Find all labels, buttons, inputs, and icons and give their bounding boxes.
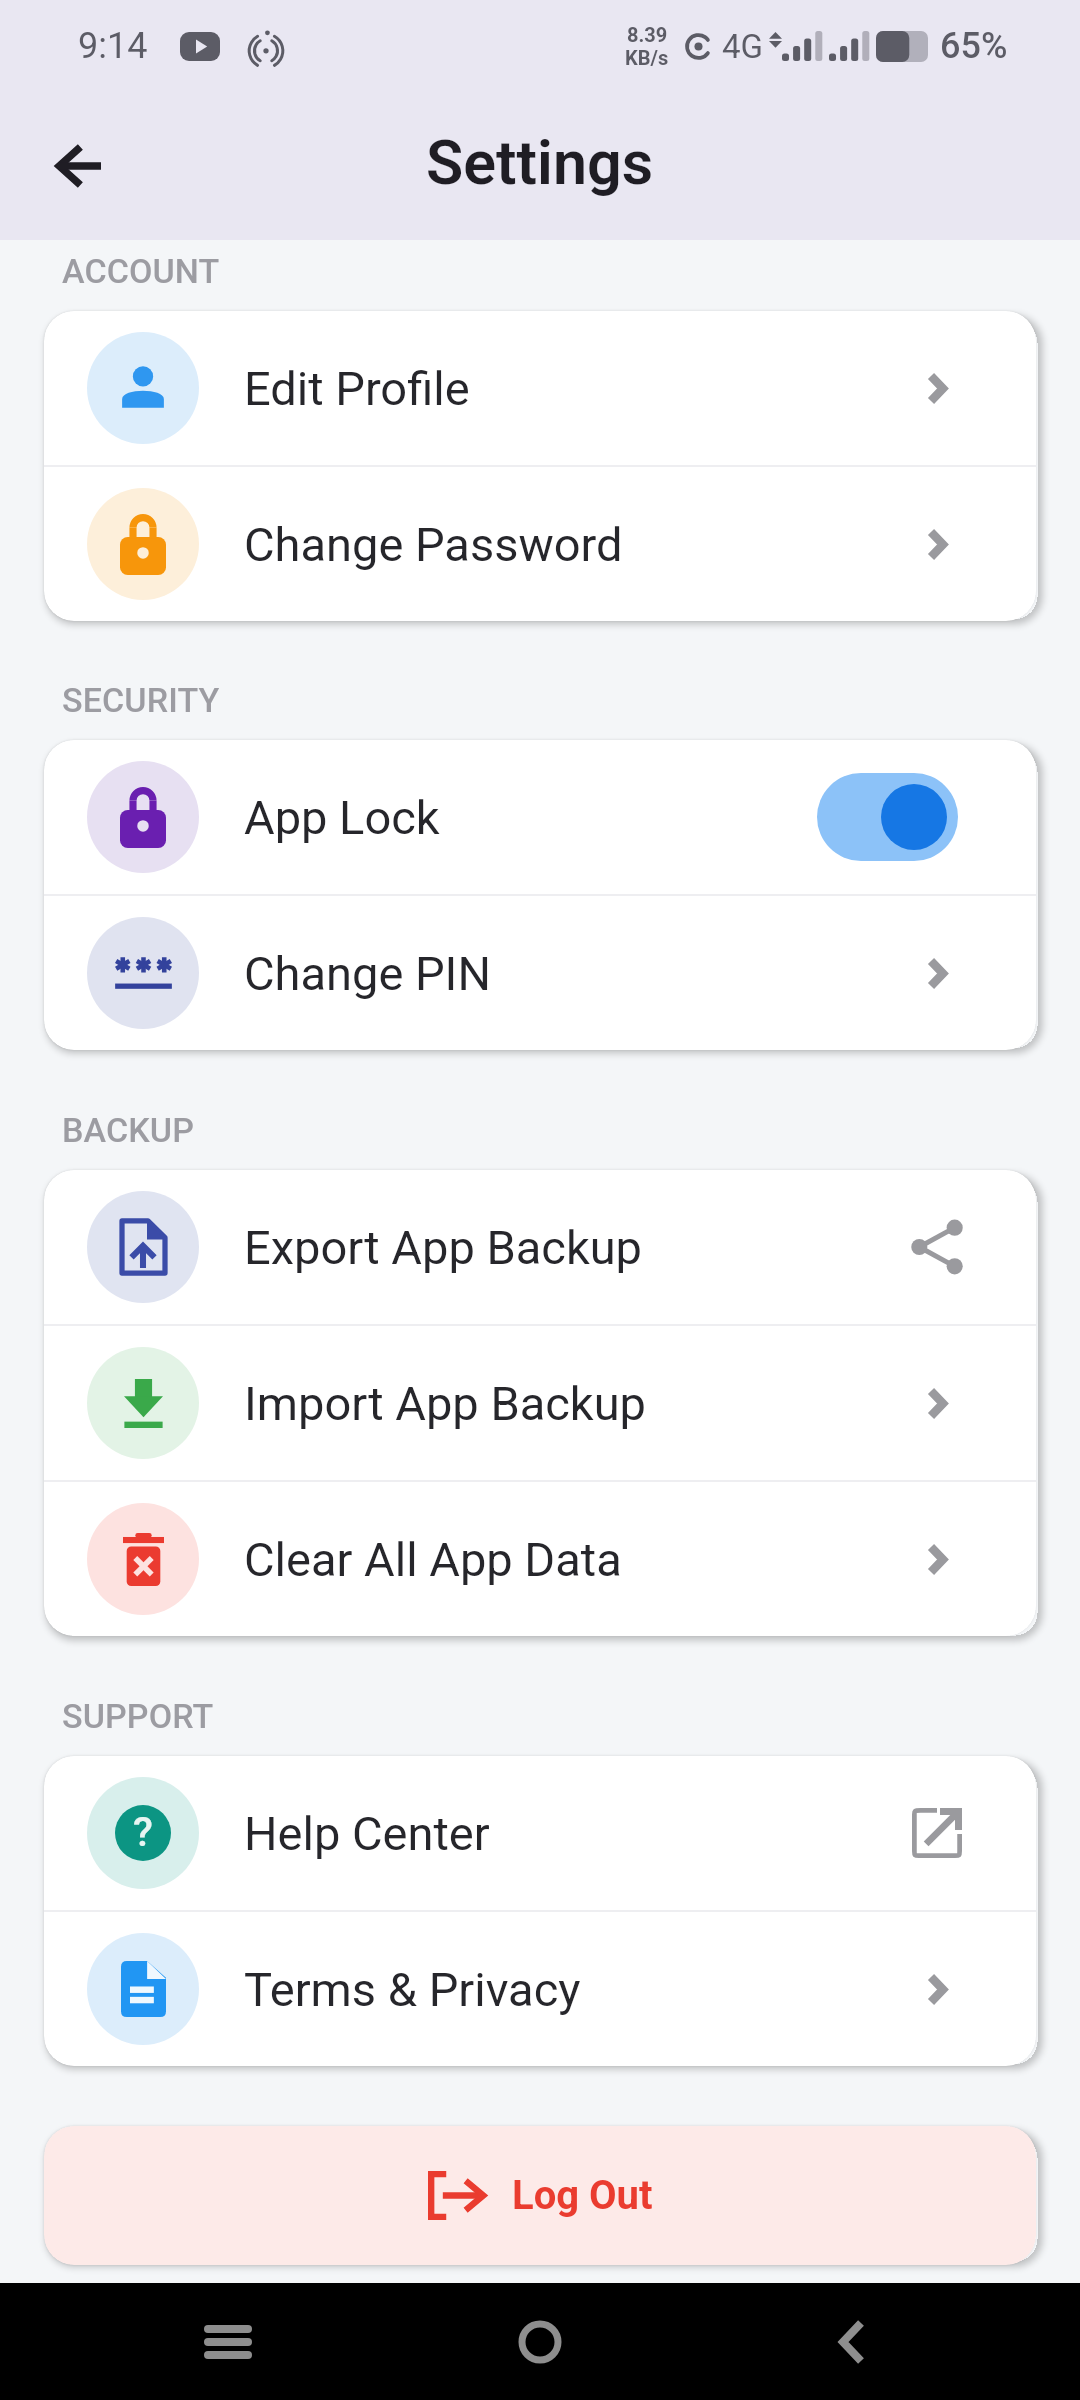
staticText: 8.39 (627, 23, 668, 46)
staticText: Terms & Privacy (244, 1962, 909, 2017)
button[interactable]: App Lock (44, 740, 1036, 894)
button[interactable]: Clear All App Data (44, 1482, 1036, 1636)
staticText: Help Center (244, 1806, 909, 1861)
staticText: 65% (940, 25, 1008, 67)
button[interactable]: App Lock (817, 773, 958, 861)
button[interactable]: Back (24, 111, 134, 221)
button[interactable]: Home (485, 2287, 595, 2397)
button[interactable]: Edit Profile (44, 311, 1036, 465)
staticText: SECURITY (62, 680, 220, 720)
staticText: KB/s (625, 46, 669, 69)
button[interactable]: Export App Backup (44, 1170, 1036, 1324)
staticText: Change Password (244, 517, 909, 572)
button[interactable]: Back (797, 2287, 907, 2397)
staticText: ? (133, 1808, 153, 1856)
button[interactable]: ? (44, 1756, 1036, 1910)
staticText: App Lock (244, 790, 824, 845)
staticText: Import App Backup (244, 1376, 909, 1431)
staticText: Change PIN (244, 946, 909, 1001)
button[interactable]: Terms & Privacy (44, 1912, 1036, 2066)
button[interactable]: Recent apps (173, 2287, 283, 2397)
button[interactable]: Open in new window (909, 1805, 965, 1861)
staticText: 4G (722, 27, 764, 66)
staticText: Clear All App Data (244, 1532, 909, 1587)
button[interactable]: Change PIN (44, 896, 1036, 1050)
staticText: Export App Backup (244, 1220, 909, 1275)
button[interactable]: Share (909, 1219, 965, 1275)
button[interactable]: Import App Backup (44, 1326, 1036, 1480)
staticText: Log Out (512, 2172, 653, 2219)
button[interactable]: Log Out (44, 2126, 1036, 2265)
staticText: BACKUP (62, 1110, 194, 1150)
staticText: Settings (426, 127, 654, 198)
staticText: 9:14 (78, 25, 148, 67)
staticText: Edit Profile (244, 361, 909, 416)
staticText: SUPPORT (62, 1696, 214, 1736)
button[interactable]: Change Password (44, 467, 1036, 621)
staticText: ACCOUNT (62, 251, 220, 291)
